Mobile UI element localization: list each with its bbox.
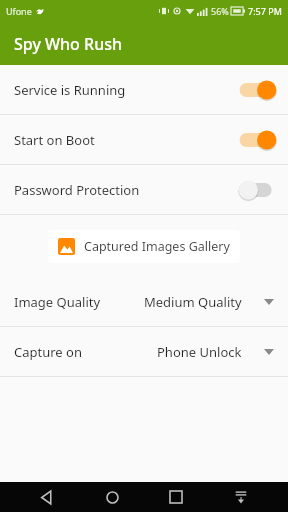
- staticText: Ufone: [6, 5, 32, 17]
- staticText: Captured Images Gallery: [84, 238, 230, 255]
- button[interactable]: Back: [30, 482, 64, 512]
- button[interactable]: Password Protection: [0, 165, 288, 214]
- button[interactable]: Service is Running: [0, 65, 288, 114]
- button[interactable]: Recent apps: [159, 482, 193, 512]
- staticText: Image Quality: [14, 293, 101, 311]
- staticText: Phone Unlock: [157, 343, 242, 361]
- staticText: Start on Boot: [14, 131, 95, 149]
- staticText: Medium Quality: [144, 293, 242, 311]
- button[interactable]: Capture on: [0, 327, 288, 376]
- staticText: Spy Who Rush: [14, 33, 122, 55]
- button[interactable]: Start on Boot: [0, 115, 288, 164]
- button[interactable]: Hide keyboard: [224, 482, 258, 512]
- button[interactable]: Home: [95, 482, 129, 512]
- staticText: 7:57 PM: [248, 5, 282, 17]
- staticText: Service is Running: [14, 81, 126, 99]
- button[interactable]: Captured Images Gallery: [48, 230, 240, 263]
- staticText: Password Protection: [14, 181, 140, 199]
- button[interactable]: Image Quality: [0, 277, 288, 326]
- staticText: Capture on: [14, 343, 82, 361]
- staticText: 56%: [211, 5, 229, 17]
